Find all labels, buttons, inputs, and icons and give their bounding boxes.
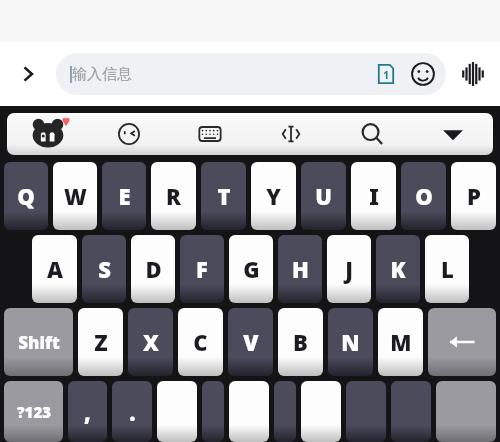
staticText: I — [369, 181, 379, 211]
staticText: G — [243, 254, 260, 284]
staticText: Z — [94, 327, 108, 357]
staticText: H — [292, 254, 309, 284]
button[interactable] — [436, 381, 496, 442]
staticText: Y — [266, 181, 281, 211]
button[interactable]: Keyboard layout — [169, 113, 250, 155]
button[interactable]: L — [425, 235, 469, 303]
button[interactable]: D — [131, 235, 175, 303]
button[interactable]: M — [378, 308, 423, 376]
button[interactable]: H — [278, 235, 322, 303]
button[interactable] — [301, 381, 341, 442]
staticText: A — [47, 254, 63, 284]
staticText: V — [243, 327, 259, 357]
button[interactable]: K — [376, 235, 420, 303]
staticText: X — [143, 327, 159, 357]
button[interactable]: Search — [331, 113, 412, 155]
button[interactable]: V — [228, 308, 273, 376]
button[interactable]: Expand — [0, 42, 56, 106]
button[interactable]: B — [278, 308, 323, 376]
button[interactable]: Shift — [4, 308, 73, 376]
button[interactable]: W — [53, 162, 97, 230]
button[interactable] — [157, 381, 197, 442]
button[interactable]: F — [180, 235, 224, 303]
staticText: P — [467, 181, 481, 211]
staticText: U — [315, 181, 332, 211]
staticText: 1 — [383, 67, 390, 82]
button[interactable]: Cursor move — [250, 113, 331, 155]
button[interactable] — [391, 381, 431, 442]
button[interactable]: I — [351, 162, 396, 230]
staticText: R — [166, 181, 181, 211]
button[interactable]: Emoji — [410, 61, 436, 87]
staticText: , — [84, 397, 91, 427]
button[interactable]: C — [178, 308, 223, 376]
staticText: S — [98, 254, 111, 284]
button[interactable]: A — [32, 235, 77, 303]
button[interactable]: X — [128, 308, 173, 376]
staticText: . — [129, 397, 136, 427]
button[interactable]: , — [68, 381, 107, 442]
button[interactable]: N — [328, 308, 373, 376]
button[interactable]: Baidu input — [7, 113, 88, 155]
button[interactable]: O — [401, 162, 446, 230]
staticText: 输入信息 — [72, 65, 132, 84]
button[interactable]: T — [201, 162, 246, 230]
button[interactable]: P — [451, 162, 496, 230]
staticText: F — [196, 254, 208, 284]
button[interactable]: E — [102, 162, 146, 230]
staticText: K — [390, 254, 406, 284]
staticText: Shift — [18, 331, 60, 354]
staticText: M — [390, 327, 412, 357]
button[interactable] — [428, 308, 496, 376]
button[interactable]: S — [82, 235, 126, 303]
staticText: B — [293, 327, 308, 357]
button[interactable]: Y — [251, 162, 296, 230]
staticText: ?123 — [17, 402, 51, 422]
button[interactable]: ?123 — [4, 381, 63, 442]
staticText: N — [341, 327, 360, 357]
staticText: E — [118, 181, 131, 211]
button[interactable]: R — [151, 162, 196, 230]
staticText: C — [193, 327, 208, 357]
button[interactable]: Emoticons — [88, 113, 169, 155]
button[interactable]: Card — [374, 62, 398, 86]
button[interactable] — [229, 381, 269, 442]
staticText: T — [217, 181, 231, 211]
staticText: W — [64, 181, 87, 211]
button[interactable]: 输入信息 — [56, 53, 446, 95]
staticText: J — [345, 254, 353, 284]
staticText: D — [145, 254, 162, 284]
button[interactable]: Z — [78, 308, 123, 376]
button[interactable]: Q — [4, 162, 48, 230]
button[interactable]: Voice — [446, 42, 500, 106]
button[interactable]: G — [229, 235, 273, 303]
button[interactable]: Hide keyboard — [412, 113, 493, 155]
button[interactable] — [274, 381, 296, 442]
staticText: Q — [17, 181, 35, 211]
button[interactable]: U — [301, 162, 346, 230]
staticText: O — [415, 181, 433, 211]
button[interactable]: J — [327, 235, 371, 303]
staticText: L — [441, 254, 454, 284]
button[interactable] — [346, 381, 386, 442]
button[interactable] — [202, 381, 224, 442]
button[interactable]: . — [112, 381, 152, 442]
